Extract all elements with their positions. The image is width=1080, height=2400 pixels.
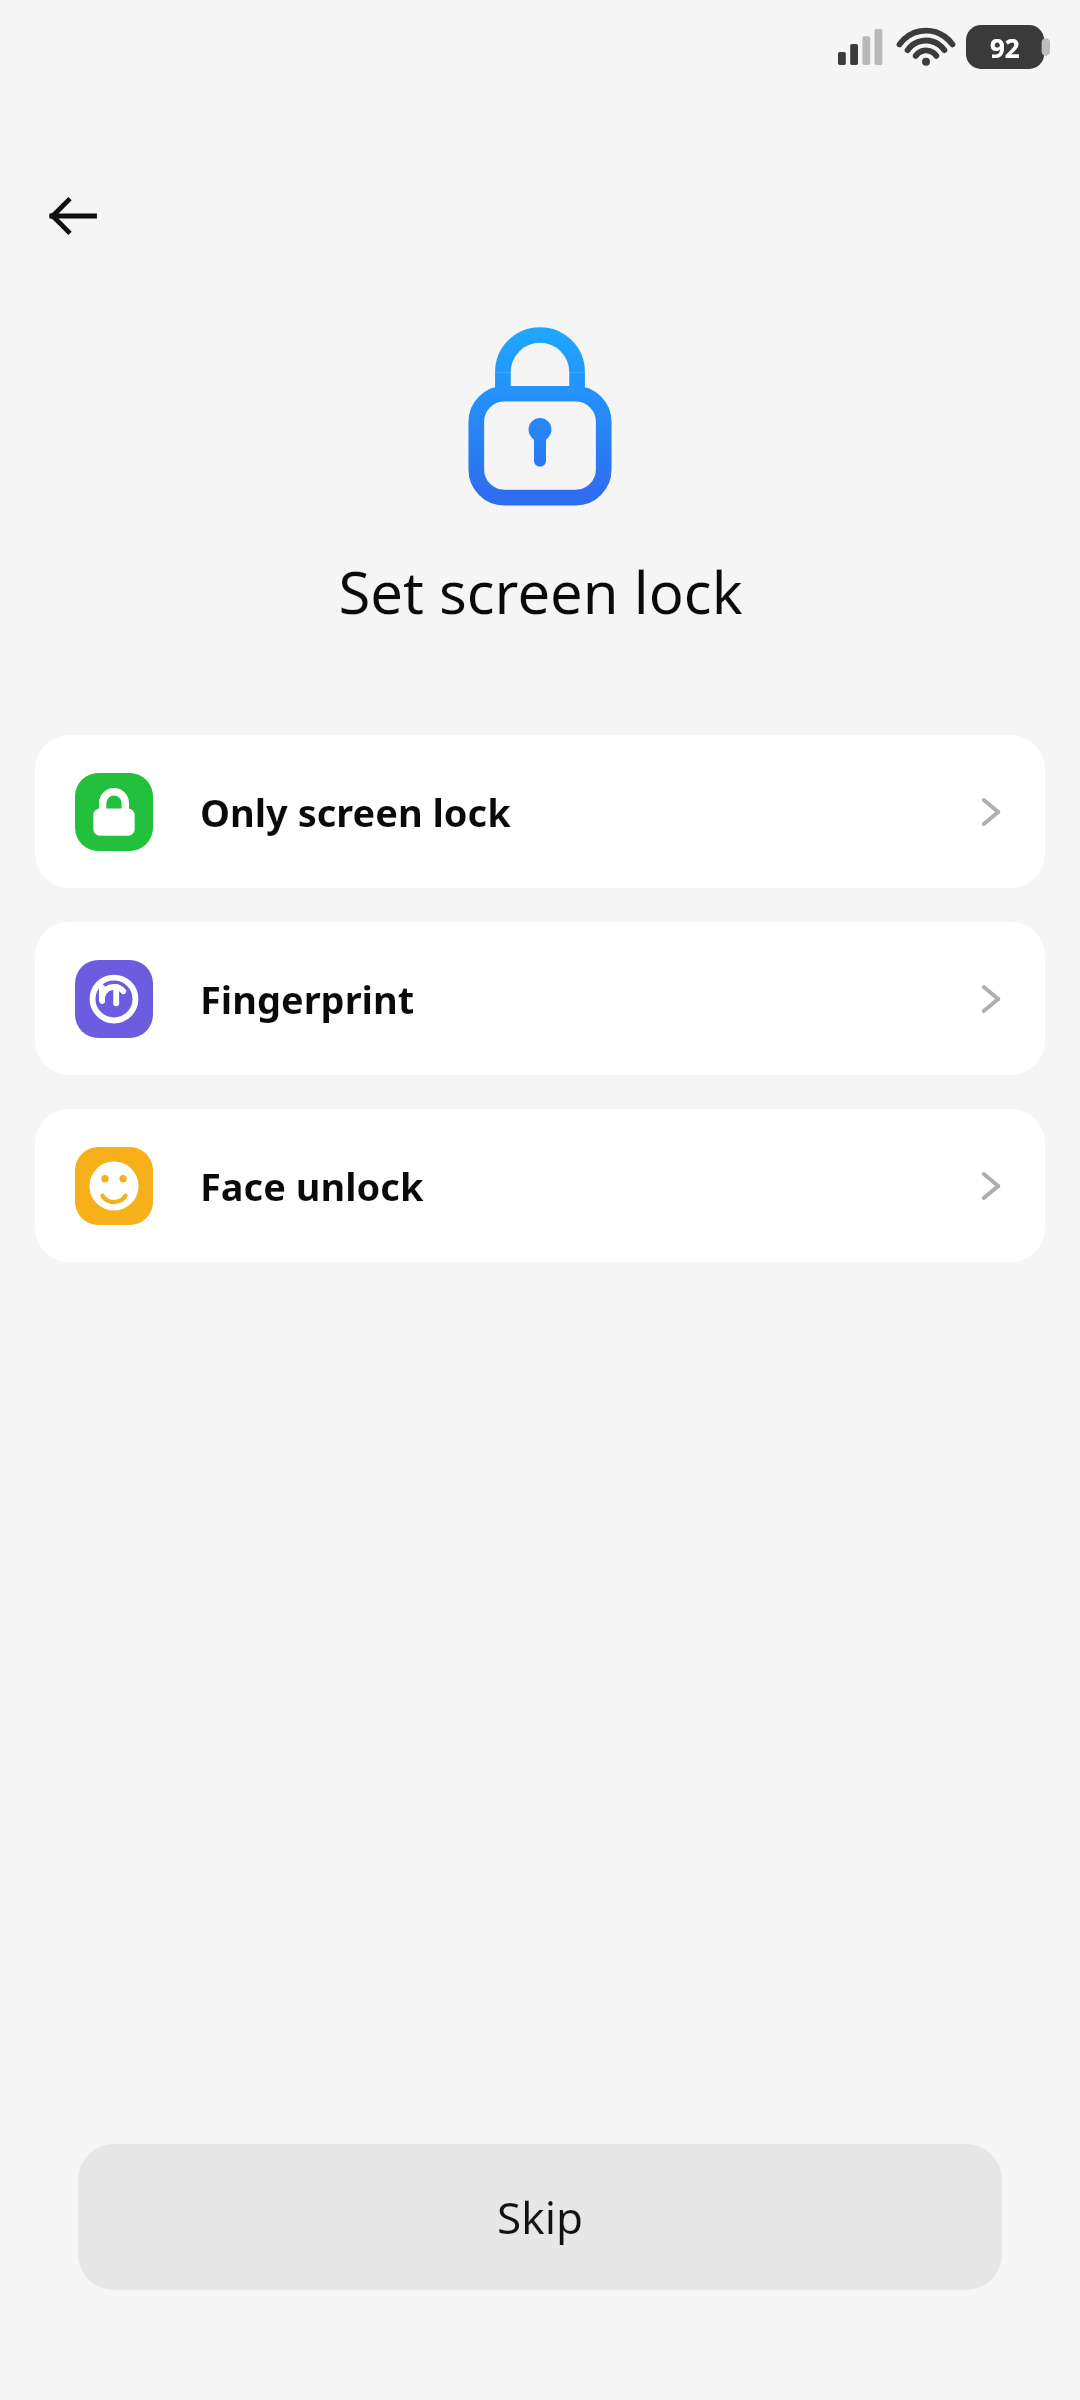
button[interactable]: Fingerprint (35, 922, 1045, 1075)
staticText: Face unlock (200, 1160, 424, 1212)
button[interactable]: Back (36, 180, 108, 252)
staticText: Fingerprint (200, 973, 415, 1025)
button[interactable]: Skip (78, 2144, 1002, 2290)
staticText: Only screen lock (200, 786, 511, 838)
button[interactable]: Only screen lock (35, 735, 1045, 888)
staticText: Skip (497, 2187, 584, 2247)
button[interactable]: Face unlock (35, 1109, 1045, 1262)
staticText: Set screen lock (338, 552, 743, 631)
staticText: 92 (990, 30, 1020, 65)
